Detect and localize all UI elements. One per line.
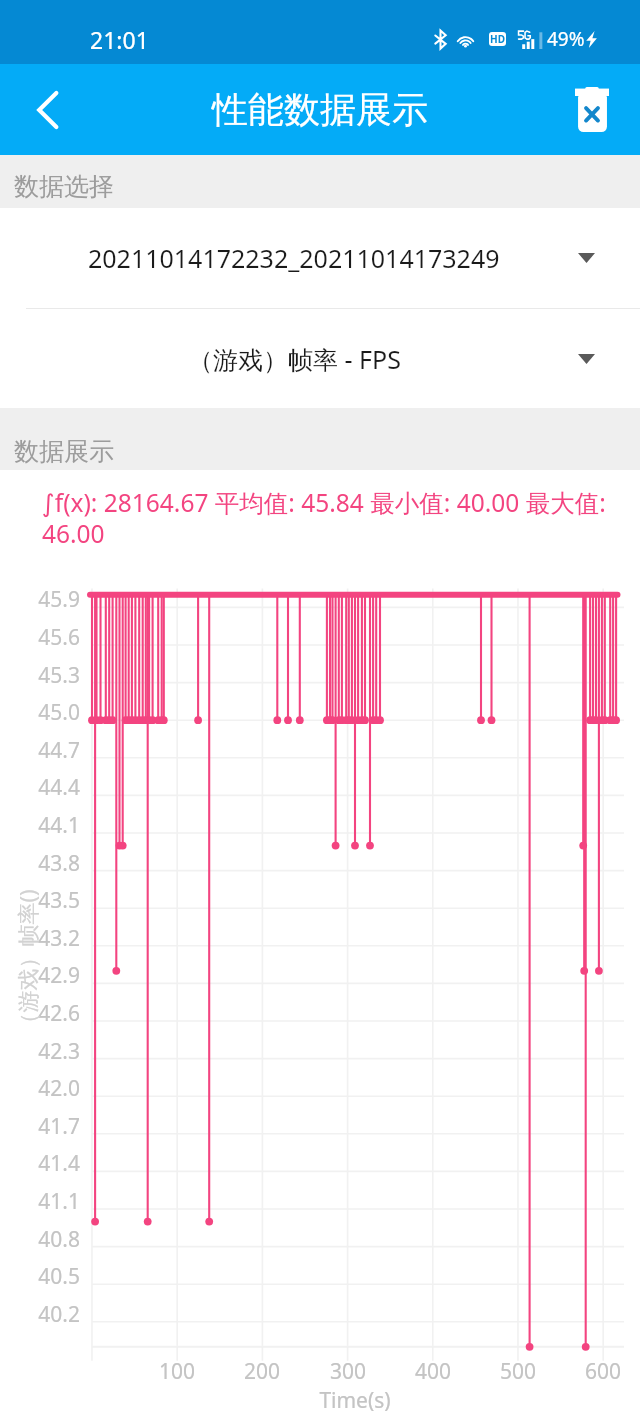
staticText: 性能数据展示 bbox=[212, 87, 428, 132]
staticText: 200 bbox=[222, 1357, 302, 1386]
staticText: 45.9 bbox=[24, 585, 80, 614]
staticText: 40.5 bbox=[24, 1262, 80, 1291]
staticText: 45.3 bbox=[24, 661, 80, 690]
staticText: 43.5 bbox=[24, 886, 80, 915]
staticText: 21:01 bbox=[90, 24, 149, 55]
staticText: 400 bbox=[393, 1357, 473, 1386]
staticText: Time(s) bbox=[315, 1386, 395, 1415]
staticText: 44.4 bbox=[24, 773, 80, 802]
staticText: 600 bbox=[563, 1357, 640, 1386]
staticText: 45.6 bbox=[24, 623, 80, 652]
staticText: 42.0 bbox=[24, 1074, 80, 1103]
staticText: （游戏）帧率() bbox=[12, 872, 42, 1052]
staticText: ∫f(x): 28164.67 平均值: 45.84 最小值: 40.00 最大… bbox=[42, 486, 622, 550]
staticText: 41.7 bbox=[24, 1112, 80, 1141]
staticText: 44.7 bbox=[24, 736, 80, 765]
staticText: 41.4 bbox=[24, 1149, 80, 1178]
staticText: 49% bbox=[547, 26, 585, 52]
staticText: （游戏）帧率 - FPS bbox=[188, 342, 401, 376]
staticText: 100 bbox=[137, 1357, 217, 1386]
staticText: 40.8 bbox=[24, 1225, 80, 1254]
staticText: 43.8 bbox=[24, 849, 80, 878]
button[interactable]: 20211014172232_20211014173249 bbox=[0, 208, 640, 308]
staticText: 40.2 bbox=[24, 1300, 80, 1329]
button[interactable]: （游戏）帧率 - FPS bbox=[0, 309, 640, 408]
staticText: HD bbox=[490, 32, 505, 46]
staticText: 45.0 bbox=[24, 698, 80, 727]
staticText: 44.1 bbox=[24, 811, 80, 840]
button[interactable]: 返回 bbox=[0, 64, 96, 155]
staticText: 42.9 bbox=[24, 961, 80, 990]
button[interactable]: 删除 bbox=[544, 64, 640, 155]
staticText: 20211014172232_20211014173249 bbox=[88, 241, 500, 275]
staticText: 41.1 bbox=[24, 1187, 80, 1216]
staticText: 42.3 bbox=[24, 1037, 80, 1066]
staticText: 43.2 bbox=[24, 924, 80, 953]
staticText: 42.6 bbox=[24, 999, 80, 1028]
staticText: 数据展示 bbox=[14, 436, 114, 467]
staticText: 300 bbox=[308, 1357, 388, 1386]
staticText: 数据选择 bbox=[14, 171, 114, 202]
staticText: 500 bbox=[478, 1357, 558, 1386]
